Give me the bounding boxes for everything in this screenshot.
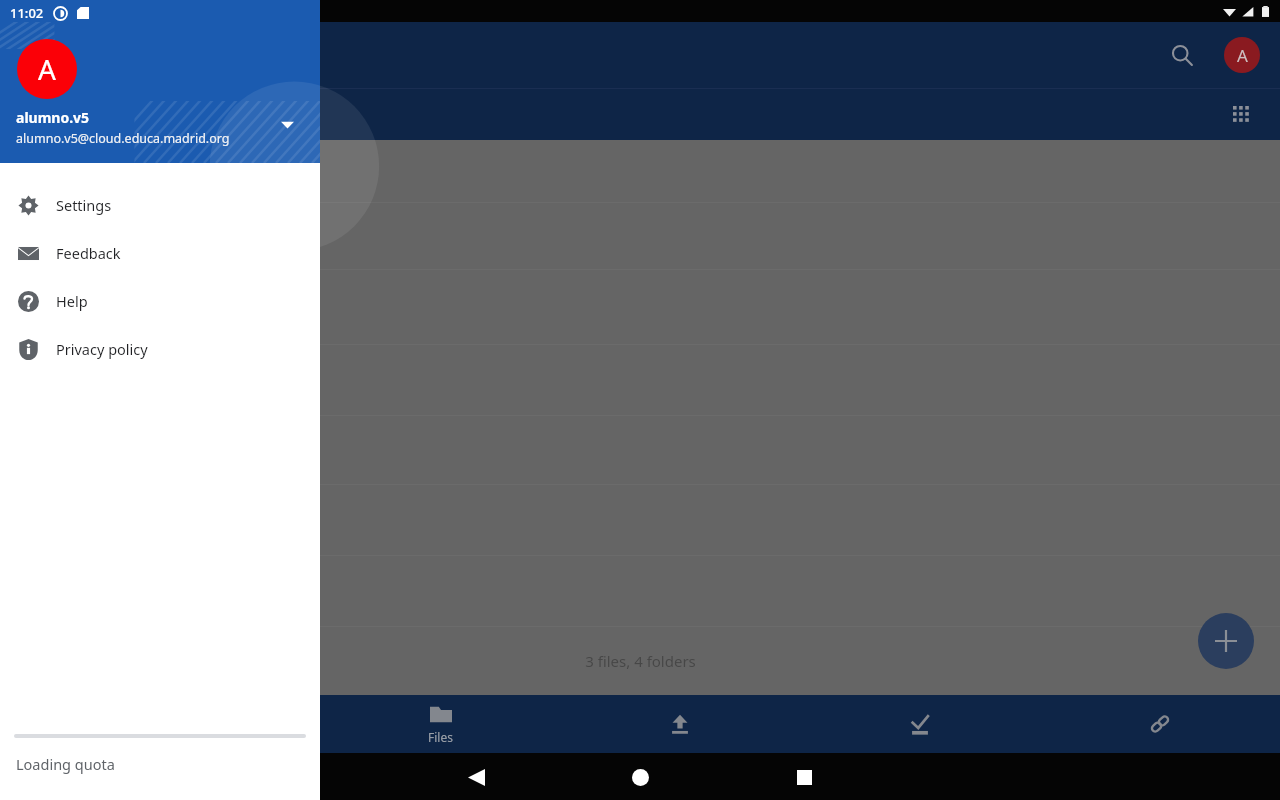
button[interactable]: Recents [781, 754, 827, 800]
staticText: A [1237, 44, 1248, 67]
staticText: Files [428, 729, 453, 745]
button[interactable]: Home [617, 754, 663, 800]
staticText: Help [56, 291, 88, 311]
button[interactable]: Account [1224, 37, 1260, 73]
button[interactable]: Files [320, 695, 560, 753]
button[interactable]: Activity [800, 695, 1040, 753]
button[interactable]: Search [1162, 35, 1202, 75]
staticText: alumno.v5@cloud.educa.madrid.org [16, 130, 230, 147]
button[interactable]: Switch account [274, 111, 300, 137]
staticText: Loading quota [16, 754, 115, 774]
staticText: Settings [56, 195, 112, 215]
button[interactable]: Privacy policy [0, 325, 320, 373]
staticText: A [38, 50, 56, 88]
button[interactable]: Settings [0, 181, 320, 229]
button[interactable]: Help [0, 277, 320, 325]
staticText: Feedback [56, 243, 121, 263]
button[interactable]: Feedback [0, 229, 320, 277]
staticText: 3 files, 4 folders [585, 651, 696, 671]
button[interactable]: Back [453, 754, 499, 800]
staticText: 11:02 [10, 4, 44, 22]
staticText: alumno.v5 [16, 108, 90, 127]
button[interactable]: Add [1198, 613, 1254, 669]
staticText: Privacy policy [56, 339, 148, 359]
button[interactable]: Shared links [1040, 695, 1280, 753]
button[interactable]: Grid view [1224, 97, 1260, 133]
button[interactable]: Upload [560, 695, 800, 753]
button[interactable]: 11:02 [0, 0, 320, 163]
